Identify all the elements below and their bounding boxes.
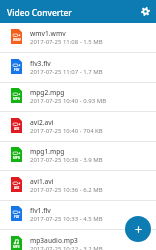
staticText: 2017-07-25 11:08 - 1.5 MB xyxy=(30,38,103,46)
staticText: FLV xyxy=(14,68,20,72)
staticText: AVI xyxy=(14,186,20,190)
button[interactable]: MPG xyxy=(0,82,156,112)
staticText: avi1.avi xyxy=(30,177,54,186)
staticText: 2017-07-25 10:40 - 0.93 MB xyxy=(30,97,107,105)
staticText: AVI xyxy=(14,127,20,131)
button[interactable]: MP3 xyxy=(0,230,156,250)
staticText: avi2.avi xyxy=(30,118,54,127)
staticText: 2017-07-25 10:22 - 3.2 MB xyxy=(30,245,103,250)
staticText: 2017-07-25 10:38 - 3.9 MB xyxy=(30,156,103,164)
staticText: MPG xyxy=(13,156,20,160)
staticText: FLV xyxy=(14,215,20,219)
button[interactable]: FLV xyxy=(0,53,156,83)
staticText: 2017-07-25 11:07 - 1.7 MB xyxy=(30,68,103,76)
staticText: flv3.flv xyxy=(30,59,51,68)
staticText: wmv1.wmv xyxy=(30,29,66,38)
button[interactable]: AVI xyxy=(0,171,156,201)
staticText: 2017-07-25 10:36 - 6.2 MB xyxy=(30,186,103,194)
staticText: MP3 xyxy=(13,245,20,249)
staticText: mpg1.mpg xyxy=(30,147,65,156)
staticText: 2017-07-25 10:40 - 704 KB xyxy=(30,127,103,135)
staticText: MPG xyxy=(13,97,20,101)
staticText: mpg2.mpg xyxy=(30,88,65,97)
staticText: Video Converter xyxy=(7,7,72,18)
button[interactable]: FLV xyxy=(0,200,156,230)
staticText: WMV xyxy=(13,38,21,42)
staticText: 2017-07-25 10:33 - 4.5 MB xyxy=(30,215,103,223)
button[interactable]: MPG xyxy=(0,141,156,171)
button[interactable]: AVI xyxy=(0,112,156,142)
button[interactable]: Settings xyxy=(138,4,152,18)
button[interactable]: WMV xyxy=(0,23,156,53)
staticText: mp3audio.mp3 xyxy=(30,236,78,245)
staticText: flv1.flv xyxy=(30,206,51,215)
button[interactable]: Add xyxy=(125,216,151,242)
